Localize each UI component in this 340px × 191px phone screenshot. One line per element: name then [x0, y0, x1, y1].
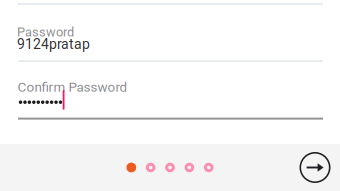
button[interactable]: Next: [299, 152, 330, 183]
staticText: Password: [17, 25, 74, 40]
staticText: 9124pratap: [17, 36, 90, 52]
button[interactable]: Confirm Password: [18, 75, 323, 119]
button[interactable]: Password: [18, 18, 323, 58]
staticText: Confirm Password: [17, 79, 127, 95]
